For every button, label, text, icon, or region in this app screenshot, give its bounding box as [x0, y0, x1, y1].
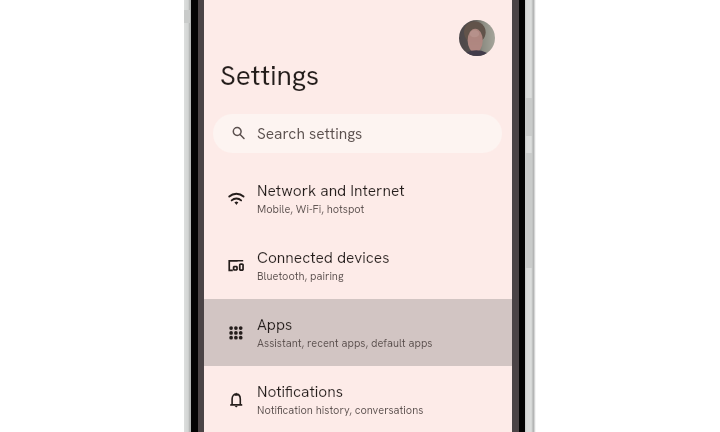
button[interactable]: Network and Internet [204, 165, 512, 232]
staticText: Notification history, conversations [257, 403, 424, 417]
button[interactable]: Notifications [204, 366, 512, 432]
staticText: Bluetooth, pairing [257, 269, 344, 283]
staticText: Settings [220, 57, 320, 93]
staticText: Mobile, Wi-Fi, hotspot [257, 202, 365, 216]
staticText: Apps [257, 314, 293, 334]
button[interactable]: Apps [204, 299, 512, 366]
staticText: Search settings [257, 123, 363, 143]
button[interactable]: Search settings [213, 114, 502, 153]
button[interactable]: Account [459, 20, 495, 56]
button[interactable]: Connected devices [204, 232, 512, 299]
staticText: Assistant, recent apps, default apps [257, 336, 433, 350]
staticText: Network and Internet [257, 180, 405, 200]
staticText: Connected devices [257, 247, 390, 267]
staticText: Notifications [257, 381, 343, 401]
